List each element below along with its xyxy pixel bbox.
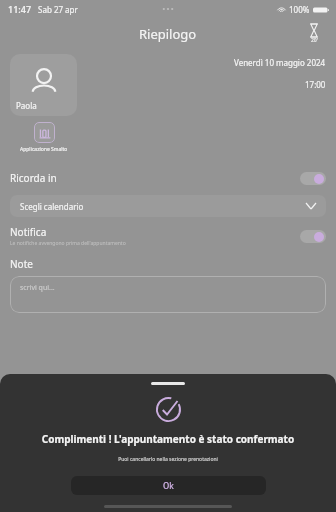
button[interactable]: Applicazione Smalto [20, 122, 68, 153]
button[interactable]: Attiva [300, 172, 326, 185]
button[interactable]: Scegli calendario [10, 195, 326, 217]
button[interactable]: scrivi qui... [10, 276, 326, 313]
staticText: Applicazione Smalto [20, 146, 68, 153]
staticText: 11:47 [8, 3, 32, 15]
staticText: Sab 27 apr [38, 4, 78, 15]
button[interactable]: Ok [71, 476, 266, 495]
staticText: Venerdì 10 maggio 2024 [234, 57, 326, 68]
staticText: Scegli calendario [20, 201, 84, 212]
staticText: scrivi qui... [20, 283, 55, 293]
staticText: Ricorda in [10, 171, 57, 185]
button[interactable]: Durata 20 minuti [302, 22, 326, 46]
staticText: Ok [163, 480, 174, 491]
staticText: Le notifiche avvengono prima dell'appunt… [10, 240, 126, 247]
staticText: Note [10, 257, 33, 271]
staticText: Complimenti ! L'appuntamento è stato con… [0, 432, 336, 446]
button[interactable]: Paola [10, 54, 77, 116]
staticText: Riepilogo [139, 25, 197, 43]
staticText: 100% [289, 4, 310, 15]
staticText: Paola [16, 100, 37, 111]
staticText: Puoi cancellarlo nella sezione prenotazi… [0, 456, 336, 463]
button[interactable]: Attiva [300, 230, 326, 243]
staticText: 17:00 [305, 79, 326, 90]
staticText: 20' [311, 37, 318, 44]
staticText: Notifica [10, 225, 47, 239]
